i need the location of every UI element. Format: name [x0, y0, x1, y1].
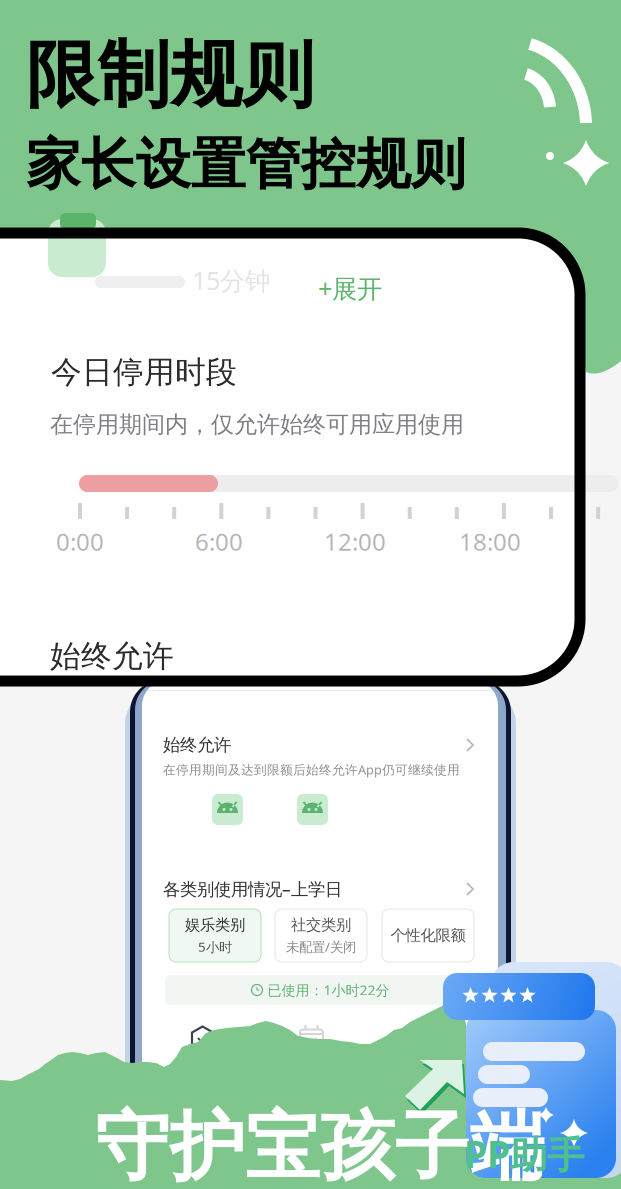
staticText: +展开	[318, 271, 382, 305]
button[interactable]: 娱乐类别	[169, 909, 261, 962]
staticText: 始终允许	[50, 637, 174, 676]
staticText: 今日停用时段	[51, 353, 237, 392]
staticText: 未配置/关闭	[286, 938, 356, 956]
staticText: 个性化限额	[390, 926, 465, 945]
staticText: 社交类别	[291, 915, 351, 935]
staticText: 5小时	[198, 938, 232, 956]
button[interactable]: 首页	[190, 1025, 215, 1051]
button[interactable]: 社交类别	[275, 909, 367, 962]
button[interactable]: 始终允许	[142, 730, 498, 788]
staticText: 各类别使用情况–上学日	[163, 877, 342, 901]
staticText: 娱乐类别	[185, 915, 245, 935]
staticText: 家长设置管控规则	[26, 130, 466, 199]
staticText: 在停用期间及达到限额后始终允许App仍可继续使用	[163, 761, 460, 778]
staticText: PP助手	[464, 1128, 584, 1179]
staticText: 12:00	[324, 525, 386, 558]
staticText: 始终允许	[163, 734, 231, 756]
button[interactable]: 个性化限额	[382, 909, 474, 962]
staticText: 已使用：1小时22分	[267, 980, 389, 1000]
staticText: 15分钟	[192, 263, 270, 297]
staticText: 在停用期间内，仅允许始终可用应用使用	[50, 410, 464, 439]
staticText: 6:00	[195, 525, 243, 558]
button[interactable]: 日程	[298, 1025, 325, 1051]
staticText: 限制规则	[26, 30, 314, 121]
staticText: 守护宝孩子端	[95, 1100, 545, 1189]
staticText: 0:00	[56, 525, 104, 558]
staticText: 18:00	[459, 525, 521, 558]
